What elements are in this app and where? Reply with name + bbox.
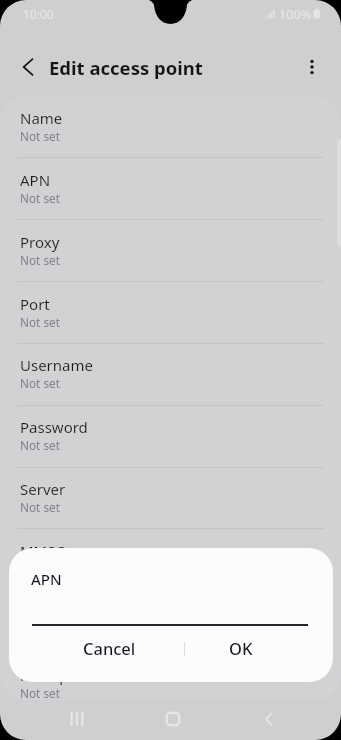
button[interactable]: More options bbox=[292, 47, 332, 87]
staticText: Not set bbox=[20, 252, 60, 268]
staticText: Edit access point bbox=[49, 55, 203, 80]
staticText: Server bbox=[20, 479, 66, 499]
staticText: Password bbox=[20, 417, 88, 437]
staticText: Not set bbox=[20, 190, 60, 206]
staticText: 10:00 bbox=[23, 6, 54, 22]
button[interactable]: Server bbox=[0, 467, 341, 528]
staticText: Username bbox=[20, 355, 93, 375]
staticText: Not set bbox=[20, 375, 60, 391]
button[interactable]: Password bbox=[0, 405, 341, 466]
button[interactable]: Proxy bbox=[0, 220, 341, 281]
staticText: OK bbox=[229, 637, 253, 659]
staticText: 100% bbox=[279, 6, 312, 23]
button[interactable]: MMS proxy bbox=[0, 591, 341, 652]
button[interactable]: Port bbox=[0, 282, 341, 343]
button[interactable]: Recent apps bbox=[58, 700, 95, 737]
staticText: Not set bbox=[20, 437, 60, 453]
button[interactable]: Name bbox=[0, 96, 341, 157]
button[interactable]: Username bbox=[0, 343, 341, 404]
button[interactable]: Cancel bbox=[39, 631, 179, 665]
staticText: MMSC bbox=[20, 541, 65, 561]
staticText: APN bbox=[20, 170, 51, 190]
staticText: Cancel bbox=[83, 637, 136, 659]
staticText: Not set bbox=[20, 685, 60, 700]
staticText: Proxy bbox=[20, 232, 60, 252]
staticText: Not set bbox=[20, 623, 60, 639]
staticText: Not set bbox=[20, 499, 60, 515]
staticText: Name bbox=[20, 108, 63, 128]
staticText: Not set bbox=[20, 314, 60, 330]
staticText: APN bbox=[31, 569, 62, 589]
button[interactable]: Navigate up bbox=[8, 47, 48, 87]
staticText: Not set bbox=[20, 561, 60, 577]
button[interactable]: Home bbox=[154, 700, 191, 737]
button[interactable]: MMS port bbox=[0, 653, 341, 700]
button[interactable]: APN bbox=[0, 158, 341, 219]
staticText: Not set bbox=[20, 128, 60, 144]
staticText: Port bbox=[20, 294, 50, 314]
button[interactable]: OK bbox=[171, 631, 311, 665]
button[interactable]: MMSC bbox=[0, 529, 341, 590]
staticText: MMS port bbox=[20, 665, 90, 685]
